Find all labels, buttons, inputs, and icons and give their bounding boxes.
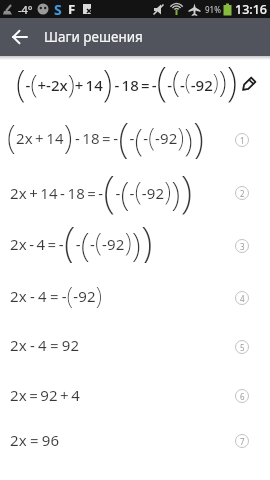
staticText: 2x + 14 - 18 = -(-(-(-92))) [10, 160, 193, 215]
staticText: 13:16 [235, 1, 268, 18]
button[interactable]: 2x - 4 = -(-92) [0, 272, 270, 323]
staticText: 3 [240, 241, 245, 252]
button[interactable]: (2x + 14) - 18 = -(-(-(-92))) [0, 114, 270, 165]
button[interactable] [238, 75, 258, 95]
staticText: 5 [240, 342, 245, 353]
staticText: 2x = 92 + 4 [10, 385, 80, 405]
staticText: F [68, 0, 76, 18]
staticText: 7 [240, 436, 245, 447]
button[interactable]: 2x - 4 = 92 [0, 323, 270, 371]
button[interactable]: 2x = 96 [0, 420, 270, 462]
staticText: 6 [240, 391, 245, 402]
staticText: 1 [240, 135, 245, 146]
staticText: (-(+-2x)+ 14) - 18 = -(-(-(-92))) [16, 53, 238, 107]
staticText: (2x + 14) - 18 = -(-(-(-92))) [7, 108, 205, 159]
staticText: 2x - 4 = 92 [10, 335, 80, 355]
button[interactable]: (-(+-2x)+ 14) - 18 = -(-(-(-92))) [0, 56, 270, 114]
staticText: S [54, 0, 62, 18]
staticText: -4° [18, 2, 33, 17]
staticText: 91% [205, 4, 221, 15]
button[interactable]: 2x + 14 - 18 = -(-(-(-92))) [0, 165, 270, 220]
button[interactable] [0, 18, 40, 56]
staticText: 2 [240, 188, 245, 199]
staticText: 2x = 96 [10, 430, 60, 450]
staticText: 4 [240, 293, 245, 304]
staticText: 2x - 4 = -(-(-(-92))) [10, 211, 153, 263]
staticText: 2x - 4 = -(-92) [10, 279, 103, 311]
button[interactable]: 2x = 92 + 4 [0, 371, 270, 420]
staticText: Шаги решения [44, 28, 143, 46]
button[interactable]: 2x - 4 = -(-(-(-92))) [0, 220, 270, 272]
